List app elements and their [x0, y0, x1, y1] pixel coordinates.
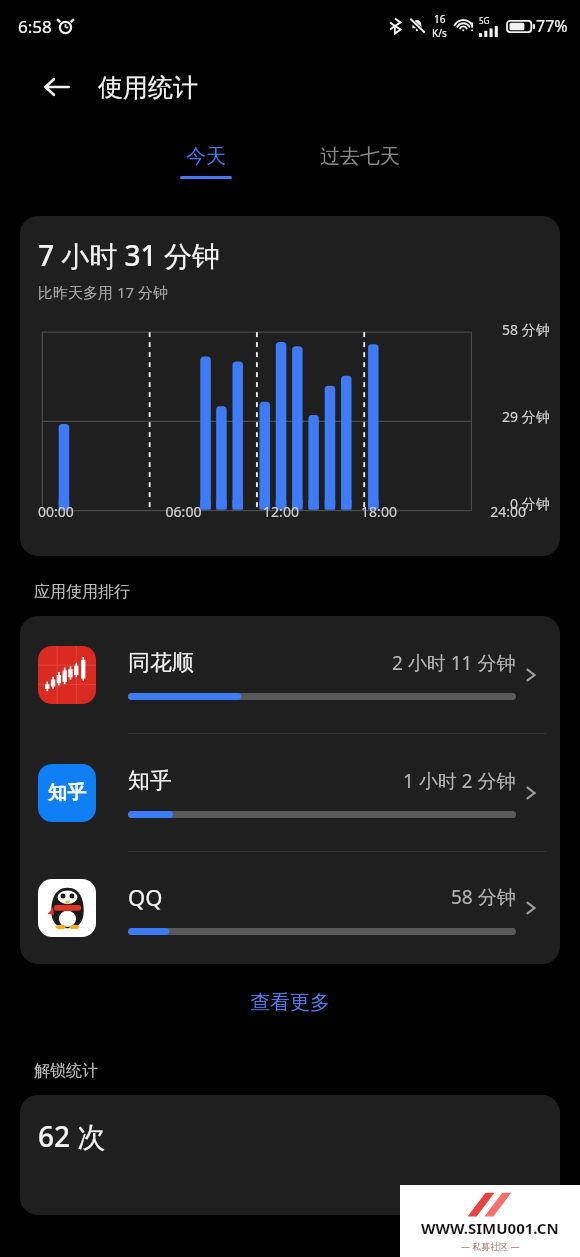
- staticText: 比昨天多用 17 分钟: [38, 282, 168, 302]
- staticText: 同花顺: [128, 649, 194, 677]
- staticText: 62 次: [38, 1117, 106, 1155]
- staticText: — 私募社区 —: [461, 1240, 520, 1252]
- staticText: K/s: [432, 26, 447, 40]
- staticText: 5G: [479, 15, 490, 26]
- button[interactable]: 7 小时 31 分钟: [20, 216, 560, 556]
- staticText: 2 小时 11 分钟: [392, 650, 516, 676]
- staticText: QQ: [128, 882, 163, 912]
- button[interactable]: Back: [38, 68, 76, 106]
- staticText: 1 小时 2 分钟: [403, 768, 516, 794]
- staticText: 过去七天: [320, 144, 400, 169]
- button[interactable]: 查看更多: [224, 982, 356, 1023]
- staticText: 18:00: [330, 502, 428, 521]
- staticText: 00:00: [38, 502, 135, 521]
- button[interactable]: 同花顺: [20, 616, 560, 733]
- button[interactable]: 知乎: [20, 734, 560, 851]
- staticText: 58 分钟: [502, 320, 550, 339]
- staticText: 应用使用排行: [34, 582, 130, 602]
- staticText: 06:00: [135, 502, 232, 521]
- staticText: 16: [434, 12, 446, 26]
- staticText: 知乎: [48, 781, 86, 805]
- staticText: WWW.SIMU001.CN: [421, 1218, 559, 1238]
- staticText: 12:00: [232, 502, 330, 521]
- staticText: 6:58: [18, 15, 52, 38]
- staticText: 今天: [186, 144, 226, 169]
- staticText: 58 分钟: [451, 884, 516, 910]
- button[interactable]: 62 次: [20, 1095, 560, 1215]
- staticText: 0 分钟: [510, 494, 550, 513]
- staticText: 77%: [536, 15, 568, 37]
- button[interactable]: 过去七天: [306, 138, 414, 185]
- staticText: 解锁统计: [34, 1061, 98, 1081]
- staticText: 使用统计: [98, 72, 198, 103]
- staticText: 24:00: [428, 502, 526, 521]
- button[interactable]: QQ: [20, 852, 560, 964]
- button[interactable]: 今天: [166, 138, 246, 185]
- staticText: 7 小时 31 分钟: [38, 236, 220, 274]
- staticText: 查看更多: [250, 990, 330, 1015]
- staticText: 知乎: [128, 767, 172, 795]
- staticText: 29 分钟: [502, 407, 550, 426]
